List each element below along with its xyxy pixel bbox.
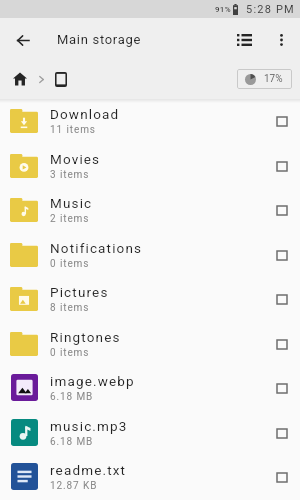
- staticText: Movies: [50, 151, 101, 167]
- button[interactable]: Select: [266, 239, 298, 271]
- staticText: 11 items: [50, 124, 96, 136]
- button[interactable]: Pictures: [0, 276, 300, 321]
- staticText: readme.txt: [50, 462, 127, 478]
- button[interactable]: Notifications: [0, 232, 300, 277]
- button[interactable]: Select: [266, 283, 298, 315]
- staticText: Music: [50, 195, 93, 211]
- button[interactable]: More options: [270, 29, 292, 51]
- staticText: 0 items: [50, 258, 90, 270]
- button[interactable]: Select: [266, 417, 298, 449]
- button[interactable]: Select: [266, 105, 298, 137]
- button[interactable]: Movies: [0, 143, 300, 188]
- staticText: 2 items: [50, 213, 90, 225]
- button[interactable]: Home: [10, 69, 30, 89]
- button[interactable]: Select: [266, 461, 298, 493]
- button[interactable]: music.mp3: [0, 410, 300, 455]
- button[interactable]: Device storage: [51, 69, 71, 89]
- button[interactable]: 17%: [237, 69, 292, 89]
- staticText: Download: [50, 106, 120, 122]
- staticText: image.webp: [50, 373, 135, 389]
- staticText: 3 items: [50, 169, 90, 181]
- button[interactable]: Select: [266, 194, 298, 226]
- staticText: 6.18 MB: [50, 391, 94, 403]
- staticText: 8 items: [50, 302, 90, 314]
- staticText: 17%: [264, 73, 283, 85]
- staticText: Main storage: [57, 32, 142, 47]
- button[interactable]: Select: [266, 372, 298, 404]
- staticText: 0 items: [50, 347, 90, 359]
- button[interactable]: Download: [0, 98, 300, 143]
- staticText: 91%: [215, 5, 231, 14]
- button[interactable]: Back: [7, 24, 39, 56]
- staticText: 6.18 MB: [50, 436, 94, 448]
- staticText: Notifications: [50, 240, 143, 256]
- staticText: Ringtones: [50, 329, 121, 345]
- staticText: Pictures: [50, 284, 109, 300]
- button[interactable]: Select: [266, 150, 298, 182]
- button[interactable]: Select: [266, 328, 298, 360]
- staticText: 5:28 PM: [246, 3, 295, 16]
- button[interactable]: image.webp: [0, 365, 300, 410]
- button[interactable]: Ringtones: [0, 321, 300, 366]
- staticText: 12.87 KB: [50, 480, 98, 492]
- staticText: music.mp3: [50, 418, 128, 434]
- button[interactable]: Music: [0, 187, 300, 232]
- button[interactable]: List view: [228, 24, 260, 56]
- button[interactable]: readme.txt: [0, 454, 300, 499]
